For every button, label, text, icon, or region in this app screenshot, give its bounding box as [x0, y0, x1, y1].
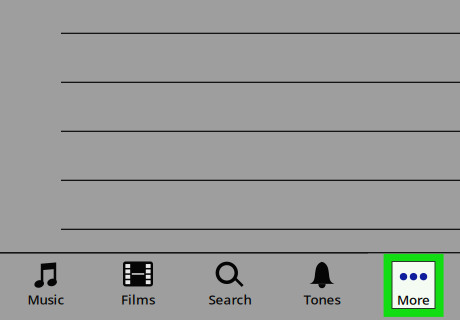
- button[interactable]: Films: [92, 253, 184, 320]
- button[interactable]: [0, 180, 460, 229]
- button[interactable]: Tones: [276, 253, 368, 320]
- button[interactable]: [0, 229, 460, 278]
- button[interactable]: [0, 131, 460, 180]
- staticText: Search: [208, 290, 251, 308]
- button[interactable]: Search: [184, 253, 276, 320]
- button[interactable]: Music: [0, 253, 92, 320]
- button[interactable]: [0, 82, 460, 131]
- staticText: Music: [27, 290, 64, 308]
- staticText: More: [397, 291, 430, 308]
- button[interactable]: [0, 33, 460, 82]
- staticText: Films: [121, 290, 155, 308]
- button[interactable]: More: [384, 254, 444, 317]
- staticText: Tones: [303, 290, 340, 308]
